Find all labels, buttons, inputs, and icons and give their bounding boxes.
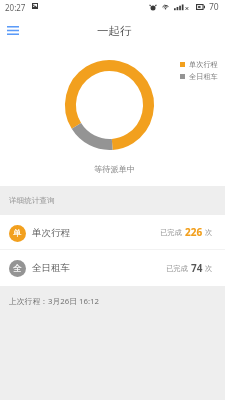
staticText: 单次行程 <box>32 227 70 239</box>
staticText: 全日租车 <box>32 262 70 274</box>
staticText: 详细统计查询 <box>9 196 55 206</box>
staticText: 226 <box>185 225 203 239</box>
staticText: 次 <box>205 264 213 273</box>
staticText: 单次行程 <box>189 60 218 69</box>
staticText: 已完成 <box>166 264 188 273</box>
staticText: 已完成 <box>160 228 182 237</box>
staticText: 次 <box>205 228 213 237</box>
button[interactable]: Open navigation menu <box>1 18 25 42</box>
staticText: 上次行程：3月26日 16:12 <box>9 296 99 307</box>
staticText: 一起行 <box>97 24 132 38</box>
staticText: 全 <box>13 263 22 274</box>
staticText: 70 <box>209 1 219 13</box>
staticText: 全日租车 <box>189 72 218 81</box>
staticText: 单 <box>13 228 22 239</box>
staticText: 74 <box>191 261 203 275</box>
button[interactable]: 单 <box>0 215 225 249</box>
staticText: 等待派单中 <box>94 164 135 174</box>
staticText: 20:27 <box>5 2 26 13</box>
button[interactable]: 全 <box>0 250 225 286</box>
